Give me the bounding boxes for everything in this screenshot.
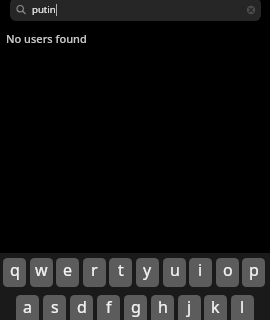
button[interactable]: w — [30, 258, 53, 287]
button[interactable]: h — [151, 295, 174, 320]
staticText: d — [77, 296, 87, 318]
staticText: putin — [32, 3, 56, 16]
button[interactable]: s — [43, 295, 66, 320]
staticText: o — [223, 259, 233, 281]
staticText: y — [143, 259, 152, 281]
staticText: No users found — [6, 31, 87, 46]
staticText: q — [10, 259, 20, 281]
button[interactable]: Clear search — [243, 2, 259, 18]
staticText: s — [51, 296, 59, 318]
staticText: g — [131, 296, 141, 318]
button[interactable]: e — [56, 258, 79, 287]
staticText: i — [198, 259, 203, 281]
staticText: f — [106, 296, 112, 318]
button[interactable]: r — [83, 258, 106, 287]
staticText: p — [249, 259, 259, 281]
button[interactable]: t — [109, 258, 132, 287]
button[interactable]: u — [163, 258, 186, 287]
button[interactable]: p — [242, 258, 265, 287]
staticText: u — [170, 259, 180, 281]
button[interactable]: o — [216, 258, 239, 287]
staticText: l — [240, 296, 245, 318]
button[interactable]: putin — [10, 0, 261, 21]
button[interactable]: j — [178, 295, 201, 320]
button[interactable]: l — [231, 295, 254, 320]
button[interactable]: g — [124, 295, 147, 320]
staticText: r — [91, 259, 98, 281]
staticText: k — [211, 296, 220, 318]
staticText: h — [158, 296, 168, 318]
button[interactable]: k — [204, 295, 227, 320]
staticText: j — [187, 296, 192, 318]
button[interactable]: y — [136, 258, 159, 287]
button[interactable]: i — [189, 258, 212, 287]
button[interactable]: f — [97, 295, 120, 320]
staticText: a — [23, 296, 32, 318]
button[interactable]: d — [70, 295, 93, 320]
staticText: e — [63, 259, 73, 281]
button[interactable]: a — [16, 295, 39, 320]
button[interactable]: q — [3, 258, 26, 287]
staticText: t — [118, 259, 124, 281]
staticText: w — [35, 259, 48, 281]
